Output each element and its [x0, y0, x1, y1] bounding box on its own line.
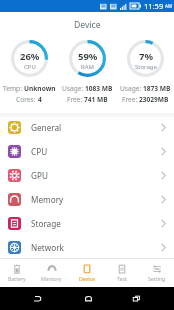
staticText: Temp:	[3, 84, 24, 93]
staticText: RAM	[81, 63, 95, 71]
button[interactable]: Memory	[0, 187, 174, 211]
staticText: 7%	[139, 50, 154, 63]
button[interactable]: Network	[0, 235, 174, 259]
staticText: Memory	[31, 194, 64, 205]
staticText: 23029MB	[139, 95, 169, 104]
button[interactable]: CPU	[0, 139, 174, 163]
staticText: 4	[38, 95, 42, 104]
staticText: Network	[31, 242, 64, 253]
button[interactable]: Recents	[124, 287, 148, 310]
staticText: CPU	[24, 63, 36, 71]
button[interactable]: Memory	[34, 259, 69, 287]
staticText: 1083 MB	[85, 84, 113, 93]
button[interactable]: Battery	[0, 259, 34, 287]
button[interactable]: Setting	[139, 259, 174, 287]
staticText: Cores:	[16, 95, 38, 104]
staticText: 26%	[20, 50, 40, 63]
button[interactable]: GPU	[0, 163, 174, 187]
staticText: Test	[117, 275, 127, 282]
staticText: Device	[79, 275, 95, 282]
button[interactable]: Storage	[0, 211, 174, 235]
staticText: 59%	[78, 50, 98, 63]
button[interactable]: Test	[104, 259, 139, 287]
button[interactable]: Back	[25, 287, 49, 310]
staticText: Device	[74, 19, 101, 31]
staticText: Storage	[135, 63, 157, 71]
staticText: GPU	[31, 170, 48, 181]
staticText: 11:59	[144, 1, 164, 11]
button[interactable]: General	[0, 115, 174, 139]
button[interactable]: Home	[76, 287, 100, 310]
staticText: General	[31, 122, 62, 133]
staticText: Usage:	[120, 84, 143, 93]
staticText: Setting	[148, 275, 166, 282]
staticText: Free:	[67, 95, 84, 104]
button[interactable]: Device	[69, 259, 104, 287]
staticText: Free:	[122, 95, 139, 104]
staticText: AM	[165, 3, 172, 9]
staticText: Usage:	[62, 84, 85, 93]
staticText: 1873 MB	[143, 84, 171, 93]
staticText: Memory	[41, 275, 62, 282]
staticText: CPU	[31, 146, 48, 157]
staticText: Unknown	[24, 84, 56, 93]
staticText: Storage	[31, 218, 61, 229]
staticText: 741 MB	[84, 95, 108, 104]
staticText: Battery	[8, 275, 26, 282]
